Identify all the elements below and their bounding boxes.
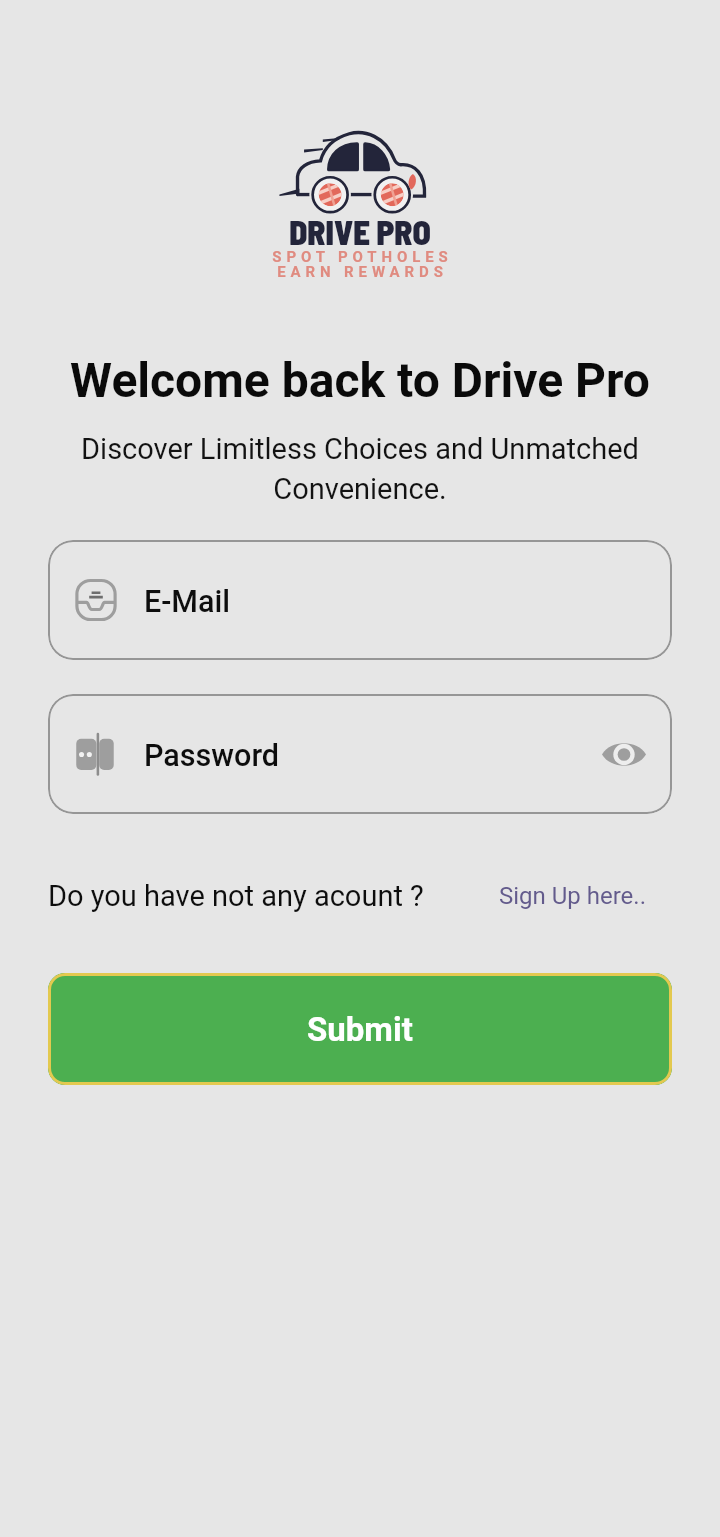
staticText: DRIVE PRO: [0, 212, 720, 252]
button[interactable]: Sign Up here..: [492, 878, 653, 914]
staticText: E-Mail: [144, 584, 231, 620]
staticText: Sign Up here..: [499, 882, 646, 910]
staticText: Submit: [307, 1010, 413, 1049]
staticText: EARN REWARDS: [5, 263, 720, 281]
staticText: SPOT POTHOLES: [5, 248, 720, 266]
button[interactable]: Show password: [596, 726, 652, 782]
staticText: Welcome back to Drive Pro: [0, 352, 720, 408]
button[interactable]: Password: [48, 694, 672, 814]
staticText: Discover Limitless Choices and Unmatched…: [70, 432, 650, 506]
staticText: Password: [144, 738, 280, 774]
button[interactable]: E-Mail: [48, 540, 672, 660]
staticText: Do you have not any acount ?: [48, 879, 424, 913]
button[interactable]: Submit: [48, 973, 672, 1085]
